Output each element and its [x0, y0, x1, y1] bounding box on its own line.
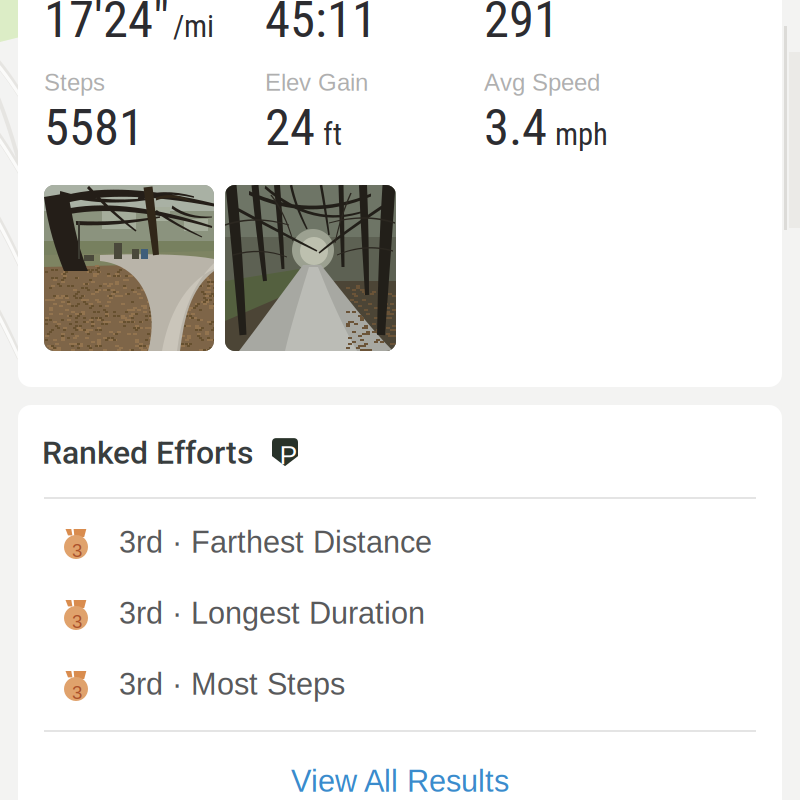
staticText: 3rd · Most Steps: [119, 667, 345, 701]
staticText: Ranked Efforts: [42, 434, 253, 471]
staticText: 291: [484, 0, 559, 49]
staticText: Steps: [44, 69, 105, 96]
button[interactable]: View All Results: [18, 741, 782, 800]
staticText: 3rd · Longest Duration: [119, 596, 425, 630]
staticText: Avg Speed: [484, 69, 600, 96]
staticText: 24: [265, 98, 315, 157]
staticText: Elev Gain: [265, 69, 368, 96]
button[interactable]: Ranked Efforts: [18, 402, 782, 494]
staticText: ft: [323, 117, 342, 152]
staticText: 3: [72, 540, 82, 561]
staticText: P: [279, 440, 297, 470]
staticText: /mi: [173, 9, 214, 44]
staticText: mph: [555, 117, 608, 152]
staticText: 3: [72, 682, 82, 703]
staticText: 3rd · Farthest Distance: [119, 525, 432, 559]
staticText: 45:11: [265, 0, 377, 49]
staticText: 17'24": [44, 0, 169, 49]
button[interactable]: 3: [18, 651, 782, 722]
button[interactable]: 3: [18, 580, 782, 651]
staticText: 3.4: [484, 98, 547, 157]
button[interactable]: 3: [18, 509, 782, 580]
staticText: View All Results: [291, 764, 509, 798]
staticText: 5581: [44, 98, 144, 157]
staticText: 3: [72, 611, 82, 632]
